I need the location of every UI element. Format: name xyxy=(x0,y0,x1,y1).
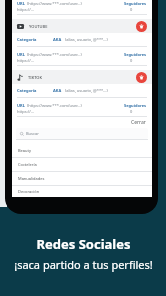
button[interactable]: URL xyxy=(17,103,147,117)
button[interactable]: URL xyxy=(17,1,147,15)
staticText: (https://www.***.com/user…) xyxy=(27,1,82,6)
staticText: TIKTOK xyxy=(28,75,43,80)
staticText: Redes Sociales xyxy=(36,235,131,253)
button[interactable]: Manualidades xyxy=(12,172,152,186)
staticText: https://… xyxy=(17,58,34,63)
staticText: YOUTUBE xyxy=(29,24,48,29)
staticText: Categoría xyxy=(17,37,37,42)
staticText: (https://www.***.com/user…) xyxy=(27,103,82,108)
staticText: URL xyxy=(17,52,25,57)
staticText: Seguidores xyxy=(124,1,147,6)
staticText: URL xyxy=(17,103,25,108)
staticText: 0 xyxy=(130,7,133,12)
button[interactable]: Decoración xyxy=(12,186,152,197)
staticText: (alias, usuario, @***…) xyxy=(65,88,108,93)
button[interactable]: Beauty xyxy=(12,144,152,158)
staticText: https://… xyxy=(17,109,34,114)
staticText: Buscar xyxy=(26,131,39,136)
staticText: ¡saca partido a tus perfiles! xyxy=(14,257,153,272)
staticText: AKA xyxy=(53,37,62,42)
staticText: (alias, usuario, @***…) xyxy=(65,37,108,42)
staticText: Cerrar xyxy=(131,119,146,126)
button[interactable]: Coctelería xyxy=(12,158,152,172)
button[interactable]: YOUTUBE xyxy=(17,19,147,33)
staticText: AKA xyxy=(53,88,62,93)
staticText: URL xyxy=(17,1,25,6)
button[interactable]: URL xyxy=(17,52,147,66)
staticText: Seguidores xyxy=(124,103,147,108)
button[interactable]: Eliminar xyxy=(136,72,147,83)
staticText: 0 xyxy=(130,58,133,63)
staticText: Decoración xyxy=(18,189,40,194)
staticText: Seguidores xyxy=(124,52,147,57)
staticText: Coctelería xyxy=(18,162,37,167)
staticText: 0 xyxy=(130,109,133,114)
staticText: https://… xyxy=(17,7,34,12)
button[interactable]: TIKTOK xyxy=(17,70,147,84)
button[interactable]: Buscar xyxy=(20,128,144,139)
staticText: Categoría xyxy=(17,88,37,93)
staticText: Manualidades xyxy=(18,176,45,181)
button[interactable]: Cerrar xyxy=(12,117,152,128)
button[interactable]: Eliminar xyxy=(136,21,147,32)
staticText: Beauty xyxy=(18,148,32,153)
button[interactable]: Categoría xyxy=(17,33,147,46)
button[interactable]: Categoría xyxy=(17,84,147,97)
staticText: (https://www.***.com/user…) xyxy=(27,52,82,57)
